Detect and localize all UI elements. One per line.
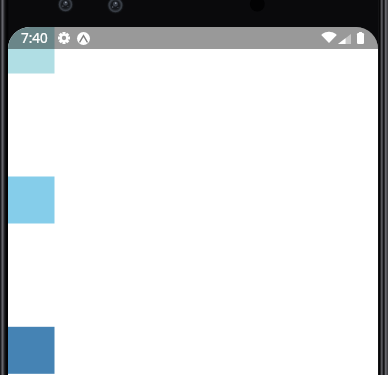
button[interactable] [8,27,378,177]
other: Mobile signal [338,34,351,44]
other: Battery [357,32,364,44]
other: App notification [77,32,90,45]
button[interactable] [8,327,378,375]
button[interactable] [8,177,378,327]
other: Wi-Fi [322,33,336,43]
button[interactable]: Settings [58,32,70,44]
staticText: 7:40 [21,29,48,47]
